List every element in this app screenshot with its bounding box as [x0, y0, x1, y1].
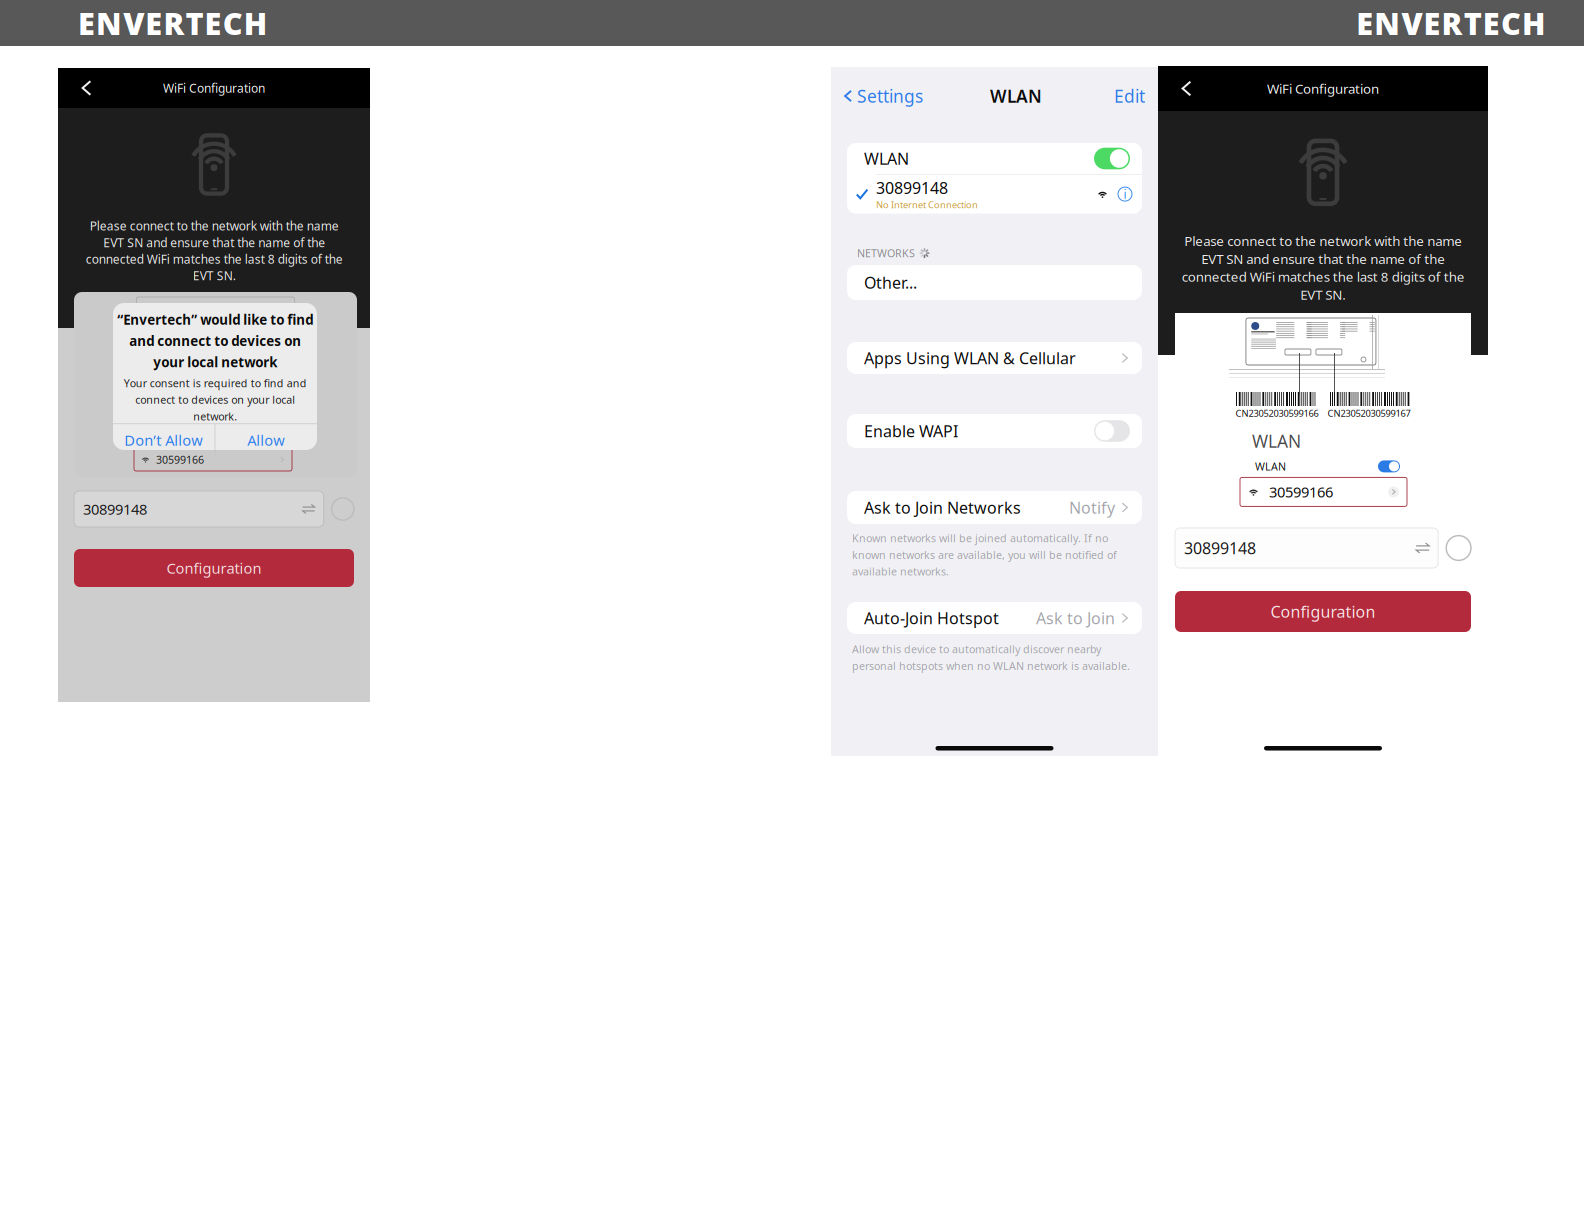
staticText: No Internet Connection	[876, 198, 978, 211]
staticText: Ask to Join	[1036, 607, 1115, 629]
button[interactable]: Allow	[215, 424, 317, 456]
staticText: Please connect to the network with the n…	[85, 218, 342, 283]
staticText: Other...	[864, 272, 917, 293]
staticText: Don’t Allow	[124, 430, 203, 450]
staticText: Ask to Join Networks	[864, 497, 1021, 518]
staticText: CN23052030599166	[1235, 407, 1318, 419]
staticText: 30899148	[1184, 537, 1256, 559]
staticText: 30599166	[1269, 482, 1333, 502]
button[interactable]: Edit	[1101, 81, 1158, 111]
staticText: Auto-Join Hotspot	[864, 607, 999, 629]
staticText: 30599166	[156, 452, 204, 467]
button[interactable]: Auto-Join Hotspot	[847, 602, 1142, 634]
staticText: Apps Using WLAN & Cellular	[864, 347, 1076, 369]
staticText: i	[1123, 186, 1126, 202]
staticText: “Envertech” would like to find and conne…	[117, 311, 313, 371]
staticText: Configuration	[1270, 601, 1375, 622]
button[interactable]: Ask to Join Networks	[847, 491, 1142, 524]
button[interactable]: Configuration	[1175, 591, 1471, 632]
button[interactable]: Back	[69, 68, 105, 108]
staticText: Allow this device to automatically disco…	[852, 642, 1130, 673]
staticText: Your consent is required to find and con…	[123, 376, 306, 423]
staticText: ENVERTECH	[1356, 3, 1545, 43]
button[interactable]: Back	[1169, 66, 1205, 111]
button[interactable]: Configuration	[74, 549, 354, 587]
button[interactable]: Don’t Allow	[113, 424, 215, 456]
staticText: Known networks will be joined automatica…	[852, 531, 1117, 578]
staticText: ENVERTECH	[78, 3, 267, 43]
staticText: Enable WAPI	[864, 420, 958, 442]
staticText: Allow	[247, 430, 285, 450]
staticText: Configuration	[166, 558, 261, 578]
button[interactable]: 30899148	[847, 175, 1142, 214]
button[interactable]: Settings	[831, 81, 931, 111]
staticText: Notify	[1069, 497, 1115, 518]
staticText: WLAN	[1255, 459, 1286, 473]
staticText: CN23052030599167	[1327, 407, 1410, 419]
staticText: WLAN	[864, 148, 909, 169]
staticText: WiFi Configuration	[1267, 80, 1379, 97]
button[interactable]: Other...	[847, 265, 1142, 300]
staticText: Edit	[1114, 84, 1145, 107]
staticText: 30899148	[876, 177, 948, 198]
staticText: NETWORKS	[857, 246, 915, 260]
staticText: WLAN	[1252, 429, 1301, 452]
button[interactable]: Apps Using WLAN & Cellular	[847, 342, 1142, 374]
staticText: 30899148	[83, 499, 147, 519]
staticText: Please connect to the network with the n…	[1181, 232, 1464, 303]
staticText: WLAN	[990, 84, 1042, 107]
staticText: Settings	[857, 84, 923, 107]
staticText: WiFi Configuration	[163, 80, 265, 96]
